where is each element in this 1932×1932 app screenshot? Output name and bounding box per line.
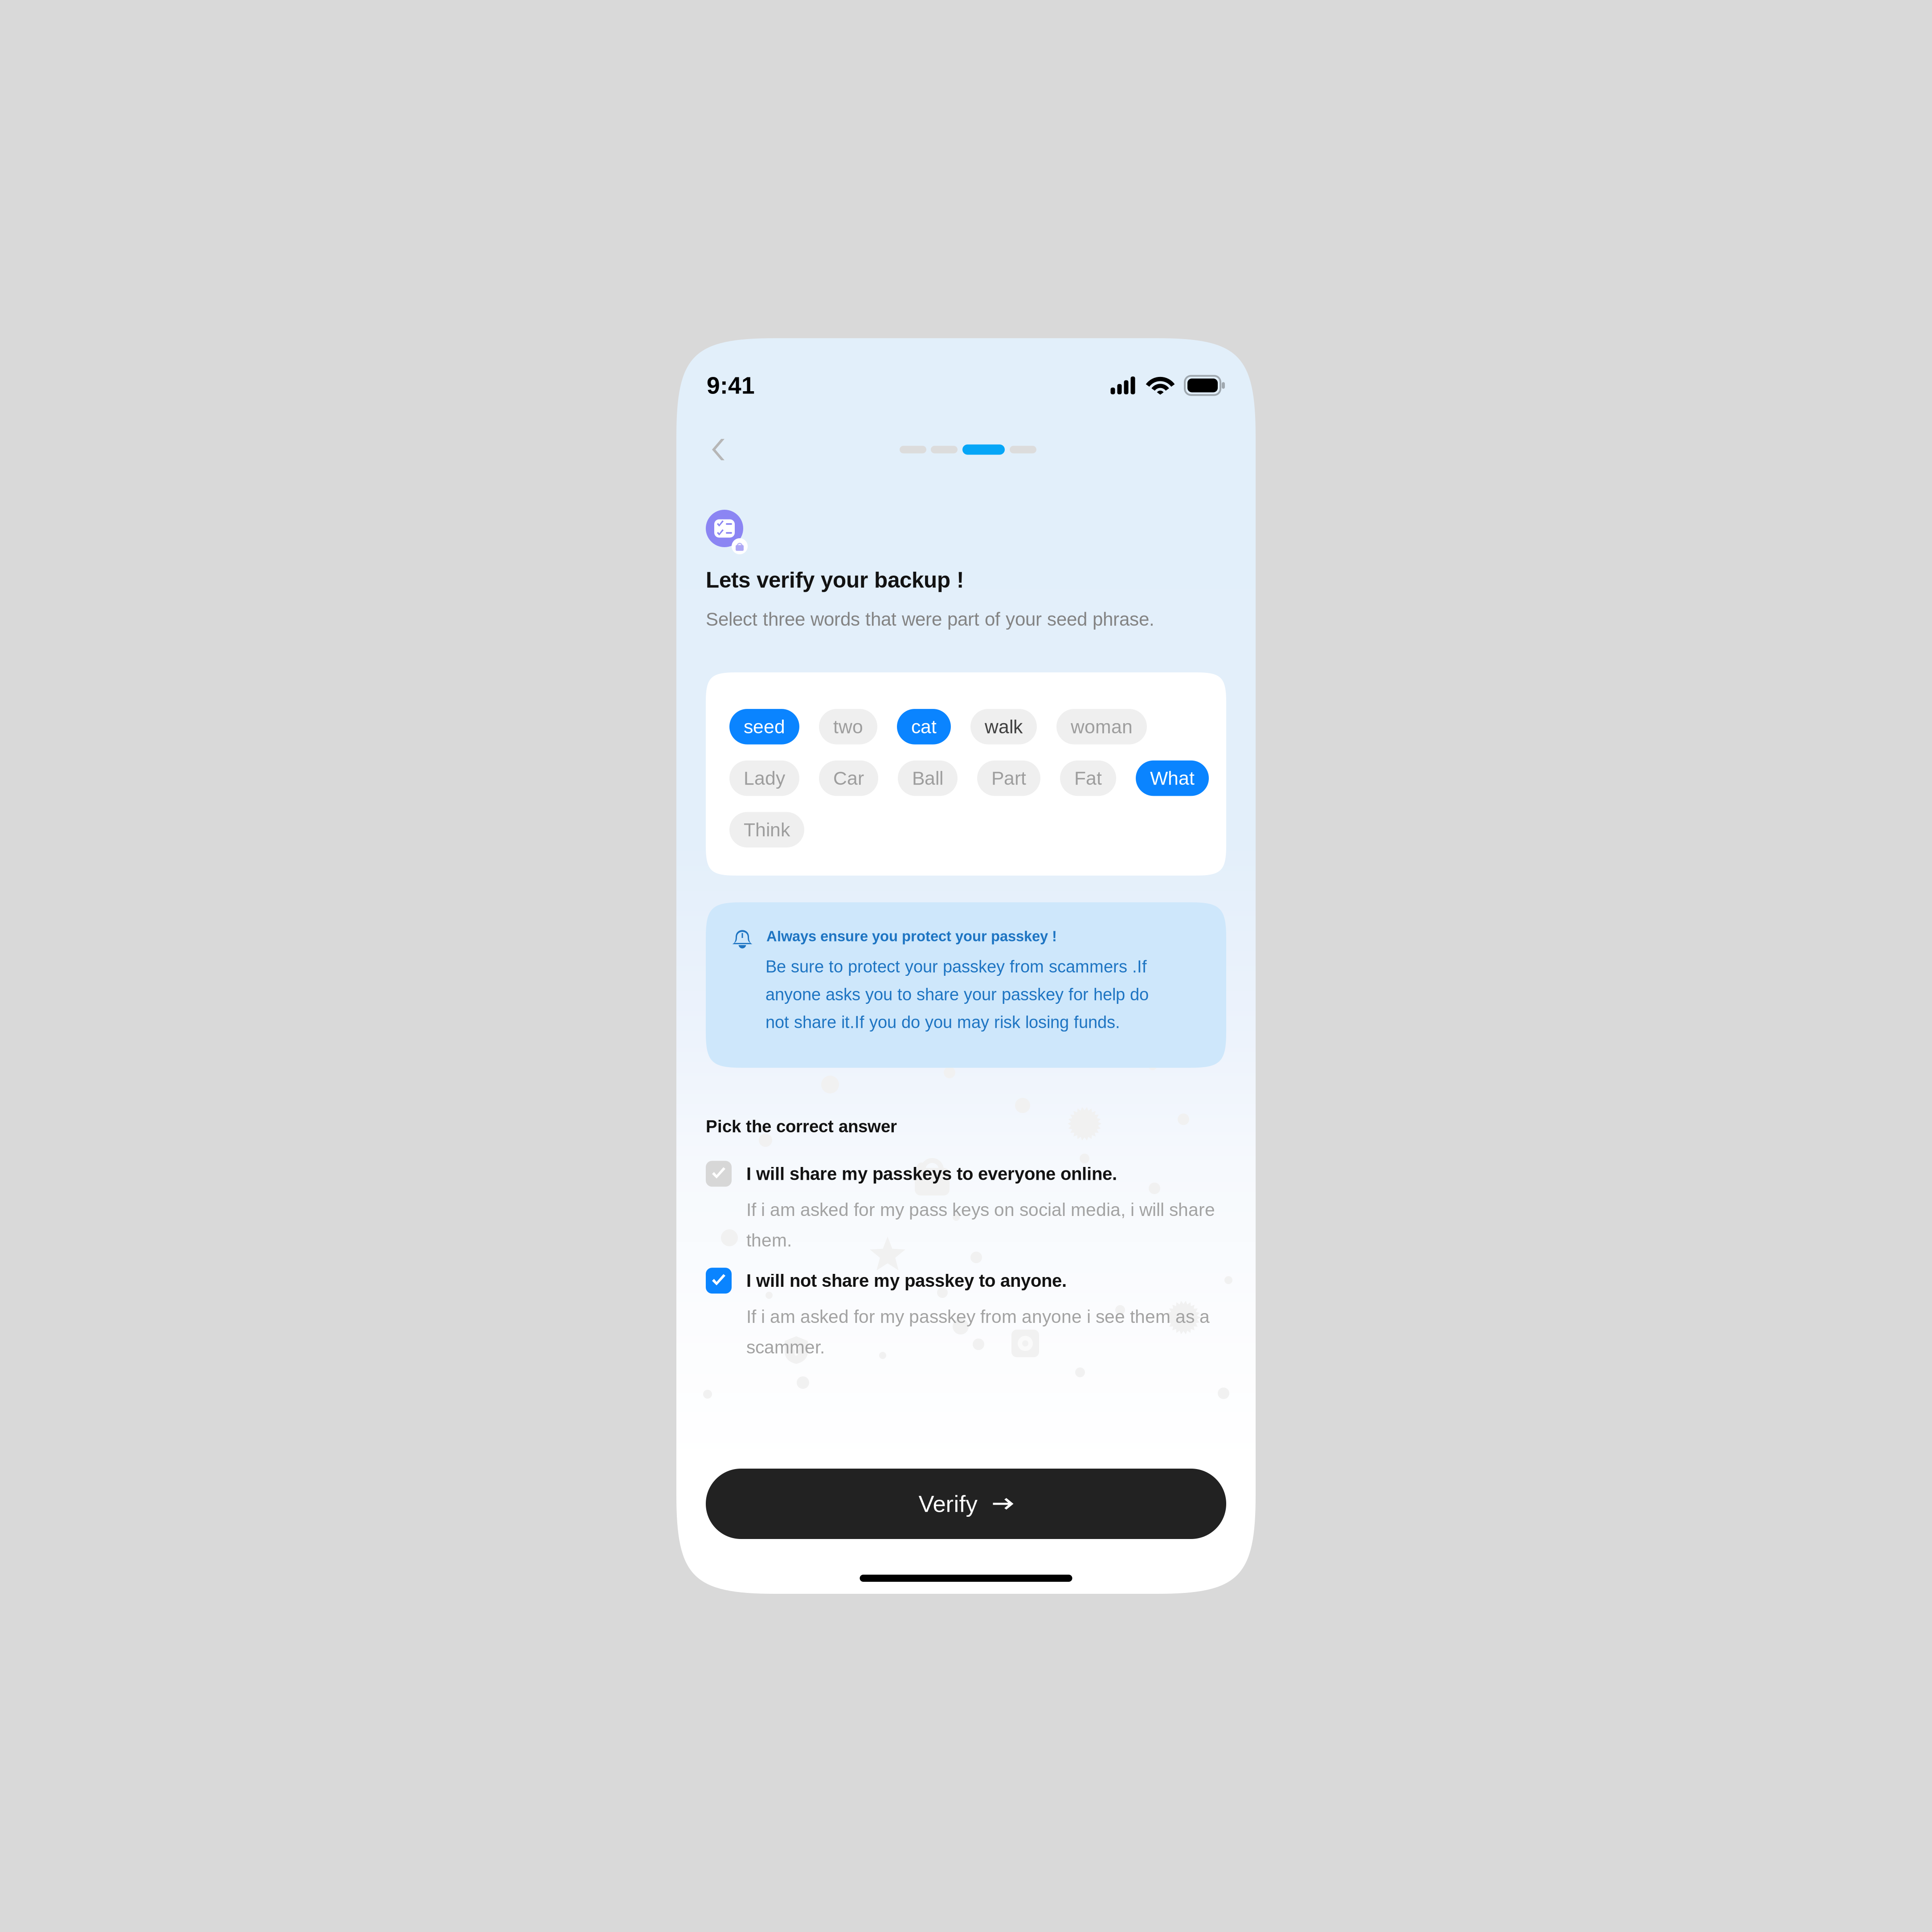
staticText: Car bbox=[833, 768, 864, 789]
button[interactable]: cat bbox=[897, 709, 951, 744]
staticText: Lady bbox=[744, 768, 785, 789]
button[interactable]: walk bbox=[970, 709, 1037, 744]
button[interactable]: What bbox=[1136, 760, 1209, 796]
staticText: Always ensure you protect your passkey ! bbox=[766, 928, 1057, 944]
button[interactable]: seed bbox=[729, 709, 799, 744]
button[interactable]: Verify bbox=[706, 1469, 1226, 1539]
staticText: woman bbox=[1071, 716, 1133, 737]
button[interactable]: woman bbox=[1056, 709, 1147, 744]
button[interactable]: I will not share my passkey to anyone. bbox=[706, 1268, 1226, 1357]
staticText: What bbox=[1150, 768, 1195, 789]
staticText: two bbox=[833, 716, 863, 737]
staticText: Ball bbox=[912, 768, 943, 789]
button[interactable]: two bbox=[819, 709, 877, 744]
staticText: 9:41 bbox=[707, 372, 755, 399]
staticText: If i am asked for my pass keys on social… bbox=[746, 1200, 1215, 1250]
button[interactable]: Lady bbox=[729, 760, 799, 796]
button[interactable]: Ball bbox=[898, 760, 958, 796]
staticText: Select three words that were part of you… bbox=[706, 609, 1154, 630]
button[interactable]: Think bbox=[729, 812, 804, 848]
staticText: cat bbox=[911, 716, 937, 737]
staticText: Part bbox=[991, 768, 1026, 789]
button[interactable]: I will share my passkeys to everyone onl… bbox=[706, 1161, 1226, 1250]
staticText: Lets verify your backup ! bbox=[706, 568, 964, 592]
staticText: I will not share my passkey to anyone. bbox=[746, 1271, 1067, 1291]
button[interactable]: Fat bbox=[1060, 760, 1116, 796]
staticText: Pick the correct answer bbox=[706, 1117, 897, 1136]
staticText: Fat bbox=[1074, 768, 1102, 789]
staticText: If i am asked for my passkey from anyone… bbox=[746, 1307, 1210, 1357]
staticText: I will share my passkeys to everyone onl… bbox=[746, 1164, 1117, 1184]
staticText: seed bbox=[744, 716, 785, 737]
button[interactable]: Part bbox=[977, 760, 1040, 796]
staticText: walk bbox=[985, 716, 1023, 737]
button[interactable]: Car bbox=[819, 760, 878, 796]
staticText: Verify bbox=[919, 1491, 977, 1517]
staticText: Be sure to protect your passkey from sca… bbox=[765, 957, 1149, 1032]
button[interactable]: Back bbox=[700, 426, 737, 473]
staticText: Think bbox=[744, 819, 790, 840]
